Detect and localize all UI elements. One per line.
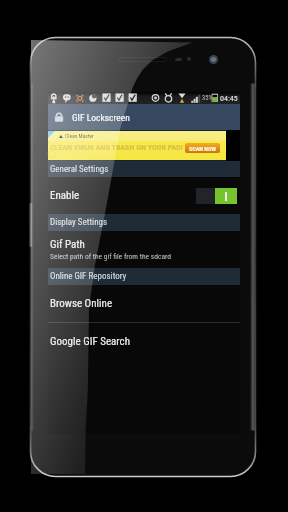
staticText: Google GIF Search [50, 335, 131, 348]
staticText: Clean Master [65, 133, 94, 139]
staticText: GIF Lockscreen [72, 112, 130, 123]
staticText: CLEAN VIRUS AND TRASH ON YOUR PAD! [50, 143, 183, 152]
staticText: 35% [202, 94, 213, 102]
button[interactable]: Browse Online [48, 285, 240, 322]
button[interactable]: Clean Master [48, 130, 226, 161]
button[interactable]: Gif Path [48, 231, 240, 268]
staticText: Online GIF Repository [50, 271, 127, 282]
staticText: 04:45 [220, 94, 238, 103]
staticText: Display Settings [50, 217, 108, 228]
staticText: Gif Path [50, 238, 85, 251]
staticText: Select path of the gif file from the sdc… [50, 252, 171, 261]
button[interactable]: Enable [48, 177, 240, 214]
staticText: Enable [50, 189, 80, 202]
staticText: General Settings [50, 164, 109, 175]
staticText: Browse Online [50, 297, 113, 310]
button[interactable]: SCAN NOW [185, 143, 220, 153]
button[interactable]: App icon [48, 104, 240, 130]
staticText: SCAN NOW [189, 145, 217, 152]
other: App icon [51, 109, 67, 125]
button[interactable]: Google GIF Search [48, 323, 240, 360]
